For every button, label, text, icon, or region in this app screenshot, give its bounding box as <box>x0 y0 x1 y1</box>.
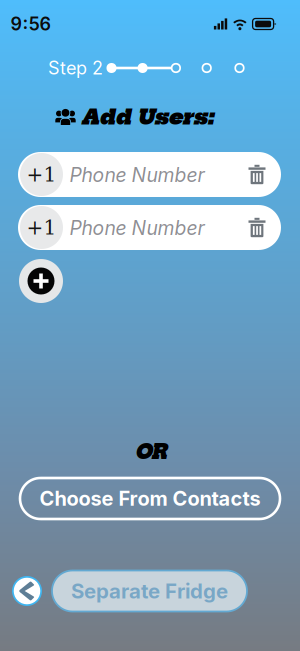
staticText: Add Users: <box>81 104 214 130</box>
staticText: Phone Number <box>69 163 204 187</box>
button[interactable]: Back <box>12 576 42 606</box>
button[interactable]: Delete phone number <box>237 205 277 250</box>
staticText: Step 2 <box>48 57 103 79</box>
staticText: +1 <box>26 163 56 186</box>
button[interactable]: Delete phone number <box>237 152 277 197</box>
staticText: Phone Number <box>69 216 204 240</box>
staticText: OR <box>135 440 167 464</box>
staticText: Choose From Contacts <box>39 486 260 511</box>
button[interactable]: Choose From Contacts <box>20 478 280 519</box>
button[interactable]: Add another phone number <box>19 259 63 303</box>
staticText: 9:56 <box>10 13 51 35</box>
staticText: +1 <box>26 216 56 239</box>
staticText: Separate Fridge <box>71 579 228 603</box>
button[interactable]: Separate Fridge <box>52 570 247 611</box>
